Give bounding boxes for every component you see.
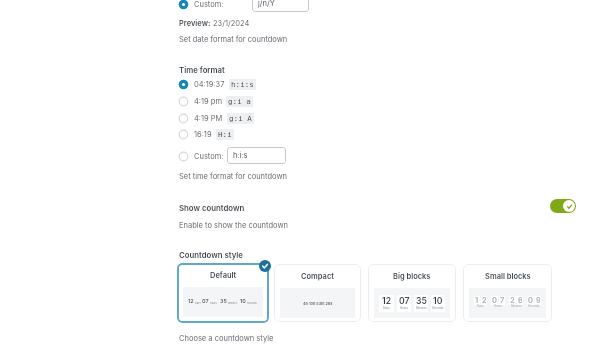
staticText: Choose a countdown style	[179, 334, 274, 343]
staticText: Custom:	[194, 0, 224, 9]
staticText: Hours	[400, 306, 408, 309]
staticText: Days	[383, 306, 390, 309]
staticText: 35	[220, 298, 227, 305]
staticText: 16:19	[194, 130, 212, 139]
staticText: Days	[195, 302, 201, 305]
button[interactable]: Custom:	[178, 151, 224, 162]
staticText: 9	[536, 296, 540, 305]
staticText: 10	[240, 298, 246, 305]
staticText: 07	[399, 296, 410, 306]
button[interactable]: Show countdown toggle	[550, 199, 576, 213]
button[interactable]: j/n/Y	[252, 0, 309, 12]
staticText: Set date format for countdown	[179, 35, 288, 44]
staticText: H:i	[218, 130, 232, 139]
button[interactable]: Custom:	[178, 0, 224, 10]
staticText: Days	[477, 304, 484, 307]
button[interactable]: 4:19 pm	[178, 96, 253, 107]
staticText: 46 10h 53m 28s	[303, 301, 333, 306]
staticText: Minutes	[511, 304, 522, 307]
staticText: 2	[510, 296, 515, 305]
staticText: Seconds	[528, 304, 540, 307]
staticText: Seconds	[432, 306, 444, 309]
staticText: Default	[210, 271, 237, 280]
staticText: 1	[475, 296, 479, 305]
staticText: Set time format for countdown	[179, 172, 287, 181]
staticText: 23/1/2024	[213, 19, 250, 28]
staticText: 04:19:37	[194, 80, 225, 89]
staticText: 4:19 pm	[194, 97, 222, 106]
button[interactable]: h:i:s	[227, 147, 286, 164]
staticText: Minutes	[416, 306, 427, 309]
staticText: Small blocks	[485, 272, 531, 281]
button[interactable]: 4:19 PM	[178, 113, 254, 124]
staticText: 12	[188, 298, 194, 305]
staticText: 35	[416, 296, 427, 306]
staticText: 12	[382, 296, 391, 306]
staticText: g:i A	[229, 114, 252, 123]
button[interactable]: Default	[177, 263, 269, 323]
staticText: 0	[492, 296, 497, 305]
staticText: Seconds	[247, 302, 257, 305]
staticText: Countdown style	[179, 250, 243, 259]
staticText: Hours	[494, 304, 502, 307]
button[interactable]: Small blocks	[463, 264, 552, 322]
staticText: h:i:s	[231, 80, 254, 89]
staticText: Custom:	[194, 152, 224, 161]
staticText: 7	[500, 296, 504, 305]
staticText: h:i:s	[233, 151, 248, 160]
button[interactable]: Compact	[274, 264, 361, 322]
button[interactable]: Big blocks	[368, 264, 456, 322]
staticText: j/n/Y	[258, 0, 275, 8]
staticText: Compact	[301, 272, 334, 281]
staticText: 0	[528, 296, 533, 305]
staticText: Time format	[179, 65, 225, 74]
staticText: 2	[482, 296, 486, 305]
button[interactable]: 16:19	[178, 129, 234, 140]
button[interactable]: 04:19:37	[178, 79, 256, 90]
staticText: g:i a	[228, 97, 251, 106]
staticText: Show countdown	[179, 203, 245, 212]
staticText: Preview:	[179, 19, 211, 28]
staticText: Big blocks	[393, 272, 431, 281]
staticText: Minutes	[228, 302, 237, 305]
staticText: 10	[433, 296, 443, 306]
staticText: Enable to show the countdown	[179, 221, 288, 230]
staticText: Hours	[210, 302, 217, 305]
staticText: 6	[518, 296, 522, 305]
staticText: 07	[202, 298, 209, 305]
staticText: 4:19 PM	[194, 114, 223, 123]
